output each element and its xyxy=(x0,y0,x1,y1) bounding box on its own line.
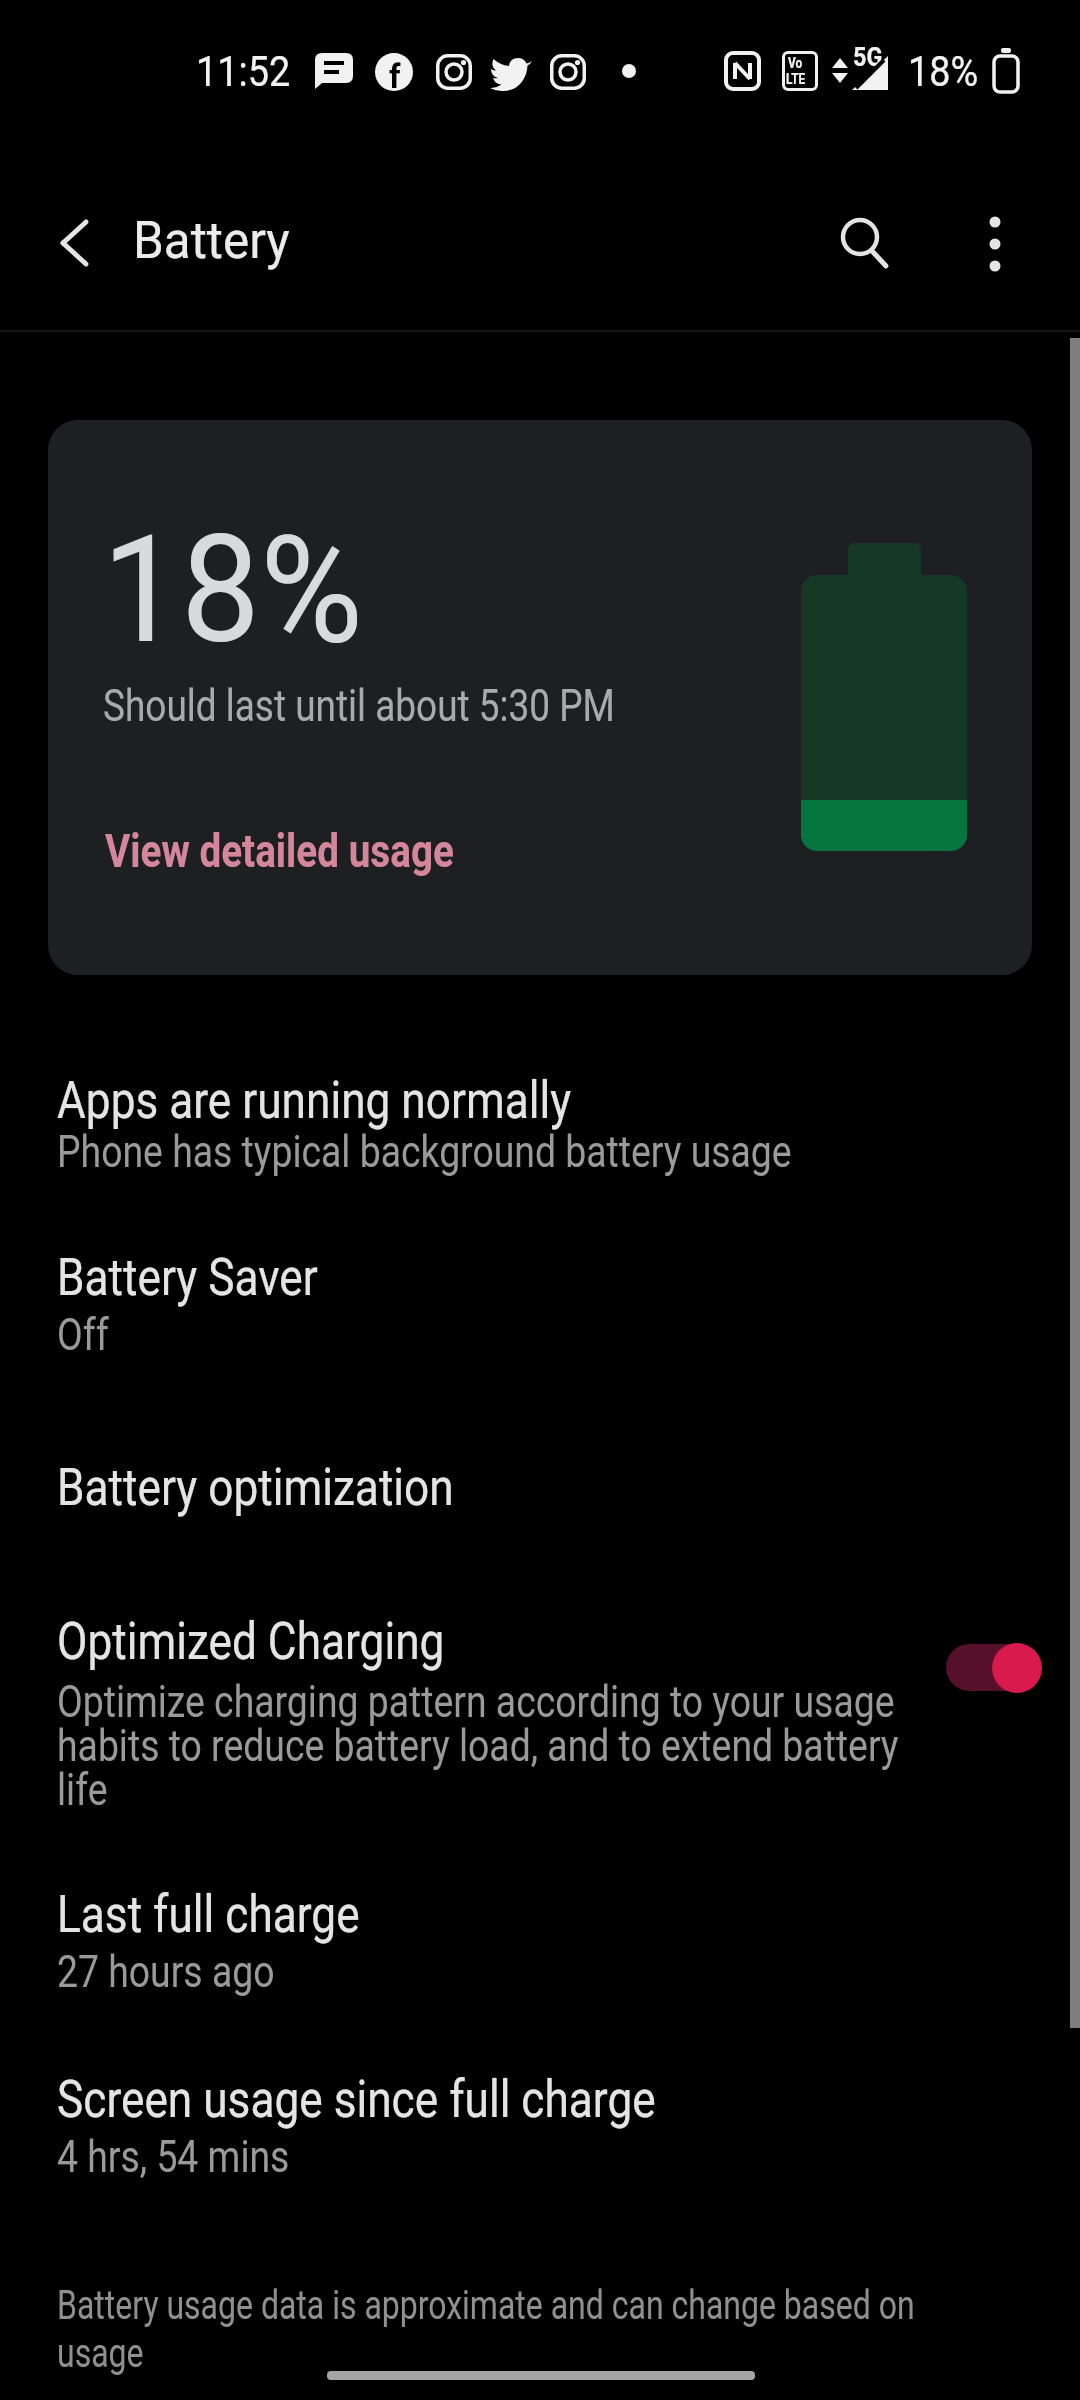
button[interactable]: 18% xyxy=(48,420,1032,975)
staticText: View detailed usage xyxy=(105,824,454,878)
button[interactable]: Battery optimization xyxy=(0,1410,1080,1530)
staticText: Screen usage since full charge xyxy=(57,2069,656,2130)
staticText: Battery usage data is approximate and ca… xyxy=(57,2282,921,2377)
staticText: Battery Saver xyxy=(57,1247,318,1308)
staticText: Optimized Charging xyxy=(57,1611,445,1672)
button[interactable] xyxy=(930,1625,1060,1705)
staticText: LTE xyxy=(786,71,805,87)
staticText: Vo xyxy=(788,55,802,71)
staticText: Off xyxy=(57,1308,109,1361)
staticText: 27 hours ago xyxy=(57,1945,275,1998)
staticText: Battery xyxy=(133,210,290,271)
staticText: Optimize charging pattern according to y… xyxy=(57,1675,919,1816)
button[interactable]: View detailed usage xyxy=(93,816,513,886)
button[interactable]: Optimized Charging xyxy=(0,1585,1080,1830)
staticText: Last full charge xyxy=(57,1884,360,1945)
button[interactable] xyxy=(40,210,110,280)
staticText: Phone has typical background battery usa… xyxy=(57,1125,792,1178)
staticText: Apps are running normally xyxy=(57,1070,571,1131)
button[interactable] xyxy=(828,208,898,278)
staticText: f xyxy=(389,56,401,91)
button[interactable]: Battery Saver xyxy=(0,1220,1080,1380)
button[interactable] xyxy=(960,208,1030,278)
staticText: 11:52 xyxy=(196,47,290,96)
staticText: 18% xyxy=(908,47,978,96)
button[interactable]: Apps are running normally xyxy=(0,1040,1080,1200)
staticText: 18% xyxy=(102,504,363,677)
staticText: 4 hrs, 54 mins xyxy=(57,2130,289,2183)
button[interactable]: Last full charge xyxy=(0,1858,1080,2018)
staticText: 5G xyxy=(853,42,883,72)
staticText: Battery optimization xyxy=(57,1457,454,1518)
button[interactable]: Screen usage since full charge xyxy=(0,2043,1080,2203)
staticText: Should last until about 5:30 PM xyxy=(103,680,615,732)
